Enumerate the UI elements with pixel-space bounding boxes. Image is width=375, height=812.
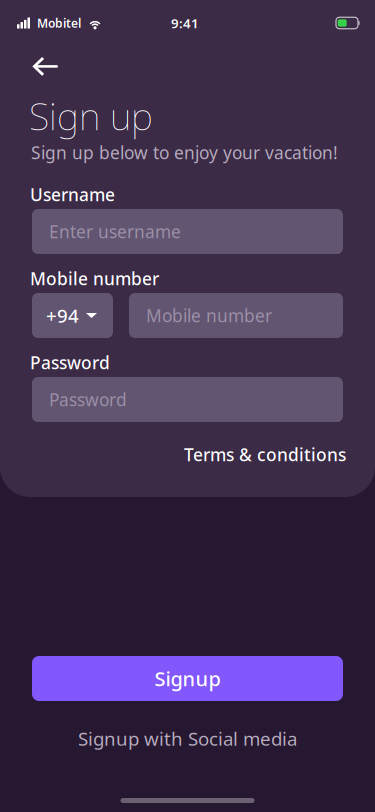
staticText: Enter username [49, 220, 181, 243]
staticText: Password [30, 351, 110, 374]
button[interactable]: +94 [32, 293, 113, 338]
button[interactable]: Signup with Social media [78, 726, 297, 751]
button[interactable]: Mobile number [129, 293, 343, 338]
staticText: Terms & conditions [184, 443, 346, 466]
staticText: Mobitel [37, 15, 81, 31]
button[interactable]: Terms & conditions [184, 443, 346, 466]
staticText: Username [30, 183, 115, 206]
button[interactable]: Back [26, 47, 64, 86]
button[interactable]: Password [32, 377, 343, 422]
staticText: Sign up [29, 91, 153, 141]
staticText: Mobile number [146, 304, 272, 327]
button[interactable]: Signup [32, 656, 343, 701]
staticText: Sign up below to enjoy your vacation! [31, 141, 338, 164]
staticText: 9:41 [171, 14, 199, 32]
staticText: Mobile number [30, 267, 159, 290]
button[interactable]: Enter username [32, 209, 343, 254]
staticText: Signup [154, 665, 220, 692]
staticText: +94 [46, 303, 79, 328]
staticText: Signup with Social media [78, 726, 297, 751]
staticText: Password [49, 388, 127, 411]
